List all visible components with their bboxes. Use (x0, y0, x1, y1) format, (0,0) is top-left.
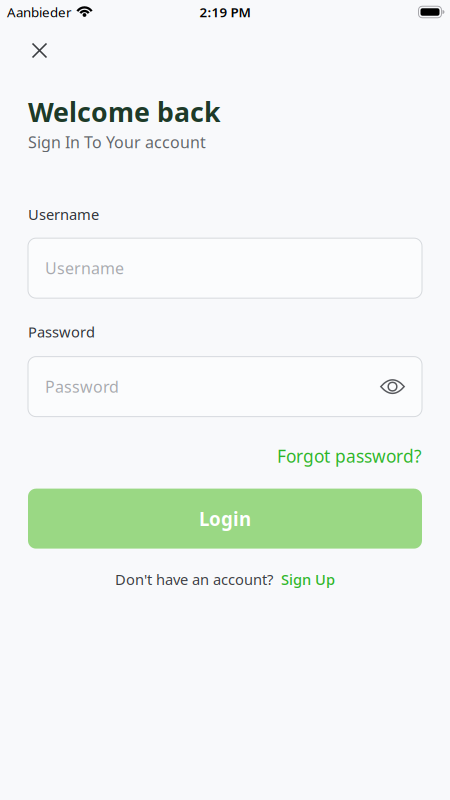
staticText: Login (199, 506, 251, 531)
staticText: Forgot password? (277, 445, 422, 468)
button[interactable]: Login (28, 489, 422, 549)
button[interactable]: Forgot password? (277, 445, 422, 468)
staticText: 2:19 PM (199, 3, 250, 21)
staticText: Username (45, 257, 124, 279)
staticText: Password (28, 322, 95, 342)
staticText: Don't have an account? (115, 570, 273, 589)
button[interactable] (380, 379, 405, 395)
staticText: Username (28, 205, 99, 224)
staticText: Aanbieder (7, 3, 72, 21)
staticText: Sign In To Your account (28, 131, 206, 153)
button[interactable]: Sign Up (281, 570, 335, 589)
staticText: Password (45, 376, 119, 397)
staticText: Sign Up (281, 570, 335, 589)
button[interactable] (0, 22, 47, 58)
staticText: Welcome back (28, 94, 221, 129)
